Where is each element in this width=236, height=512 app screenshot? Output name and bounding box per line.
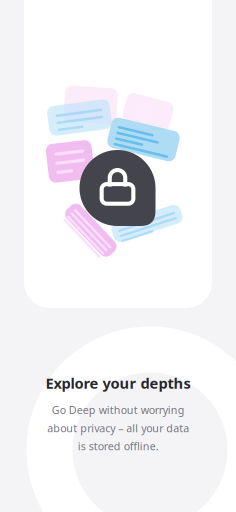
staticText: Go Deep without worrying about privacy –… — [47, 403, 189, 453]
staticText: Explore your depths — [45, 373, 190, 393]
